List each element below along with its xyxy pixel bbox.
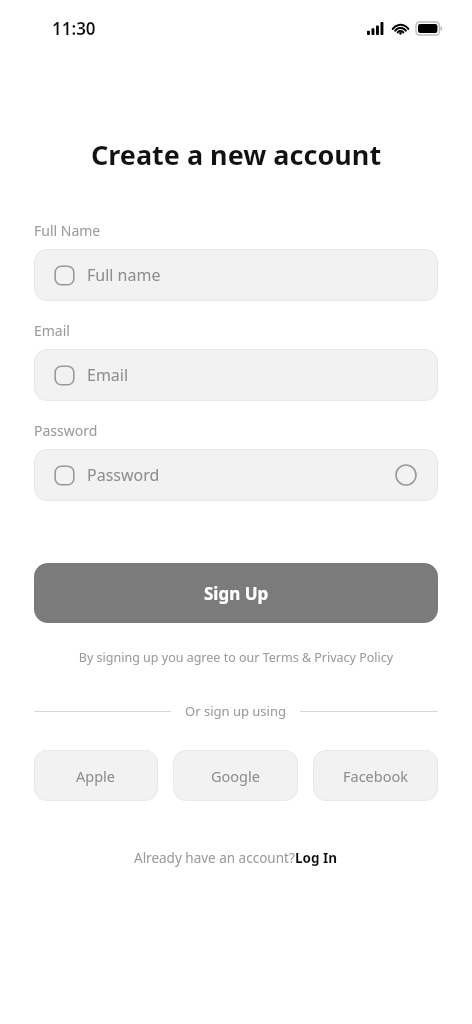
staticText: Email [34,321,70,340]
staticText: Already have an account? [134,849,295,867]
staticText: Create a new account [0,136,472,173]
staticText: Apple [76,766,116,786]
staticText: Log In [295,849,338,867]
staticText: Full Name [34,221,101,240]
staticText: Password [87,464,394,486]
button[interactable]: Toggle password visibility [394,463,418,487]
button[interactable]: Email [34,349,438,401]
staticText: Facebook [343,766,409,786]
button[interactable]: Facebook [313,750,438,801]
button[interactable]: Apple [34,750,158,801]
staticText: Sign Up [204,582,269,605]
button[interactable]: Full name [34,249,438,301]
staticText: By signing up you agree to our Terms & P… [0,649,472,666]
button[interactable]: Google [173,750,298,801]
staticText: Password [34,421,98,440]
button[interactable]: Password [34,449,438,501]
staticText: 11:30 [52,17,96,40]
button[interactable]: Log In [295,849,338,867]
staticText: Or sign up using [185,702,286,720]
staticText: Email [87,364,418,386]
staticText: Full name [87,264,418,286]
staticText: Google [211,766,260,786]
button[interactable]: Sign Up [34,563,438,623]
